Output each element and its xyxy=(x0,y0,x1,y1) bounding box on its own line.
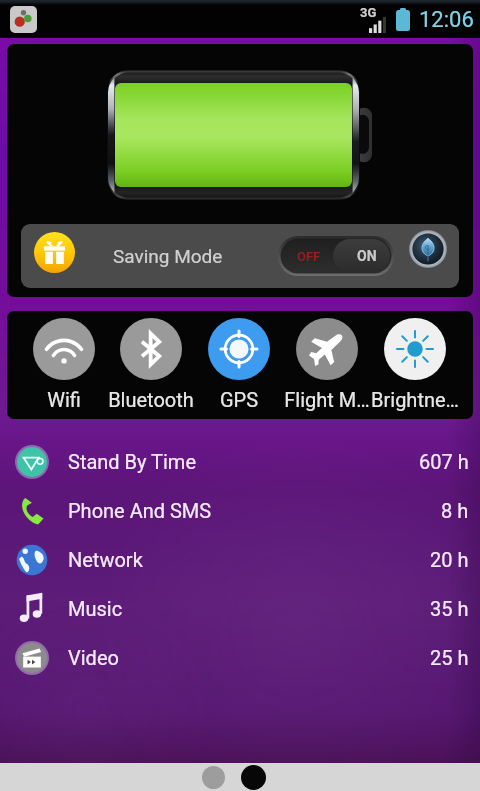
button[interactable]: Bluetooth xyxy=(106,311,196,419)
staticText: 25 h xyxy=(430,646,469,669)
button[interactable]: OFF xyxy=(278,236,394,276)
staticText: 8 h xyxy=(441,499,469,522)
staticText: OFF xyxy=(297,249,321,264)
button[interactable]: Video xyxy=(0,633,480,682)
button[interactable]: Eco mode xyxy=(406,227,450,271)
staticText: Saving Mode xyxy=(113,245,223,267)
staticText: Phone And SMS xyxy=(68,499,212,522)
staticText: 20 h xyxy=(430,548,469,571)
staticText: Flight M… xyxy=(282,388,372,411)
button[interactable]: Rewards xyxy=(34,232,75,273)
button[interactable]: Stand By Time xyxy=(0,437,480,486)
staticText: Music xyxy=(68,597,123,620)
button[interactable]: Page 2 xyxy=(241,765,266,790)
staticText: Network xyxy=(68,548,143,571)
staticText: Stand By Time xyxy=(68,450,197,473)
staticText: ON xyxy=(357,248,377,264)
button[interactable]: GPS xyxy=(194,311,284,419)
staticText: 35 h xyxy=(430,597,469,620)
staticText: 12:06 xyxy=(419,7,474,33)
staticText: 607 h xyxy=(419,450,469,473)
button[interactable]: Brightne… xyxy=(370,311,460,419)
staticText: Wifi xyxy=(19,388,109,411)
button[interactable]: Page 1 xyxy=(202,766,225,789)
button[interactable]: Network xyxy=(0,535,480,584)
button[interactable]: Phone And SMS xyxy=(0,486,480,535)
button[interactable]: App icon xyxy=(10,6,37,33)
staticText: Bluetooth xyxy=(106,388,196,411)
staticText: 3G xyxy=(360,5,377,20)
button[interactable]: Flight M… xyxy=(282,311,372,419)
button[interactable]: Rewards xyxy=(21,224,459,288)
button[interactable]: Wifi xyxy=(19,311,109,419)
staticText: GPS xyxy=(194,388,284,411)
staticText: Video xyxy=(68,646,119,669)
button[interactable]: Music xyxy=(0,584,480,633)
staticText: Brightne… xyxy=(370,388,460,411)
